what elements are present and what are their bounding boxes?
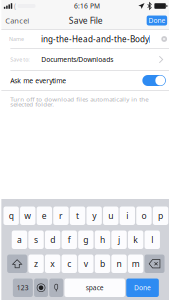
button[interactable]: a	[12, 230, 27, 249]
staticText: ing-the-Head-and-the-Body	[41, 33, 149, 45]
staticText: Cancel	[5, 15, 29, 26]
staticText: t	[76, 210, 79, 221]
button[interactable]: Done	[126, 278, 159, 297]
staticText: l	[151, 234, 153, 245]
button[interactable]: y	[86, 206, 102, 225]
staticText: 6:16 PM	[74, 1, 100, 11]
staticText: Documents/Downloads	[41, 55, 113, 64]
button[interactable]: Dictate	[49, 278, 63, 297]
staticText: Done	[148, 16, 165, 25]
button[interactable]: i	[120, 206, 135, 225]
staticText: v	[84, 258, 88, 269]
button[interactable]: g	[78, 230, 93, 249]
button[interactable]: u	[103, 206, 118, 225]
staticText: o	[141, 210, 146, 221]
button[interactable]: v	[78, 254, 93, 273]
button[interactable]: space	[64, 278, 125, 297]
button[interactable]: d	[45, 230, 60, 249]
button[interactable]: j	[111, 230, 127, 249]
staticText: x	[50, 258, 55, 269]
staticText: n	[116, 258, 121, 269]
button[interactable]: b	[95, 254, 110, 273]
staticText: Save to:	[10, 56, 29, 63]
button[interactable]: z	[28, 254, 44, 273]
button[interactable]: q	[3, 206, 19, 225]
button[interactable]: h	[95, 230, 110, 249]
button[interactable]: x	[45, 254, 60, 273]
staticText: j	[118, 234, 120, 245]
button[interactable]: n	[111, 254, 127, 273]
button[interactable]: s	[28, 230, 44, 249]
button[interactable]: l	[144, 230, 160, 249]
staticText: b	[100, 258, 105, 269]
staticText: (	[14, 1, 16, 11]
staticText: p	[158, 210, 163, 221]
button[interactable]: Save to:	[1, 49, 169, 70]
button[interactable]: t	[70, 206, 85, 225]
staticText: d	[50, 234, 55, 245]
button[interactable]: Ask me everytime	[138, 70, 169, 90]
staticText: m	[132, 258, 140, 269]
staticText: Save File	[69, 15, 103, 26]
button[interactable]: Delete	[144, 254, 164, 273]
button[interactable]: Cancel	[1, 13, 33, 28]
staticText: Done	[134, 283, 151, 292]
staticText: y	[92, 210, 96, 221]
button[interactable]: 123	[13, 278, 33, 297]
staticText: i	[126, 210, 128, 221]
staticText: g	[83, 234, 88, 245]
button[interactable]: Clear text	[158, 29, 169, 48]
staticText: s	[34, 234, 38, 245]
staticText: selected folder.	[10, 100, 54, 108]
button[interactable]: p	[153, 206, 168, 225]
button[interactable]: Emoji	[34, 278, 48, 297]
staticText: Ask me everytime	[10, 76, 66, 85]
staticText: u	[108, 210, 113, 221]
staticText: space	[86, 283, 104, 292]
staticText: k	[133, 234, 138, 245]
staticText: h	[100, 234, 105, 245]
staticText: 123	[17, 283, 29, 292]
button[interactable]: e	[37, 206, 52, 225]
staticText: Turn off to download files automatically…	[10, 95, 148, 103]
staticText: r	[59, 210, 63, 221]
button[interactable]: c	[61, 254, 77, 273]
button[interactable]: f	[61, 230, 77, 249]
staticText: a	[17, 234, 22, 245]
staticText: z	[34, 258, 38, 269]
staticText: c	[67, 258, 71, 269]
button[interactable]: w	[20, 206, 35, 225]
staticText: q	[9, 210, 14, 221]
button[interactable]: k	[128, 230, 143, 249]
button[interactable]: Done	[147, 15, 167, 25]
staticText: e	[42, 210, 47, 221]
staticText: w	[24, 210, 31, 221]
button[interactable]: o	[136, 206, 152, 225]
button[interactable]: m	[128, 254, 143, 273]
staticText: Name	[9, 35, 24, 43]
staticText: f	[68, 234, 71, 245]
button[interactable]: Shift	[7, 254, 27, 273]
button[interactable]: r	[53, 206, 69, 225]
